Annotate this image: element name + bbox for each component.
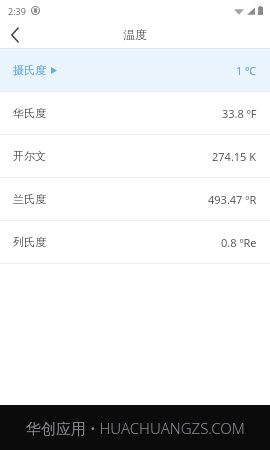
- button[interactable]: 兰氏度: [0, 178, 270, 220]
- staticText: 兰氏度: [13, 192, 46, 206]
- staticText: 1 ºC: [236, 63, 257, 78]
- staticText: 列氏度: [13, 235, 46, 249]
- staticText: 开尔文: [13, 149, 46, 163]
- button[interactable]: 列氏度: [0, 221, 270, 263]
- staticText: 493.47 ºR: [208, 192, 257, 207]
- staticText: 摄氏度: [13, 63, 46, 77]
- button[interactable]: 摄氏度: [0, 49, 270, 91]
- button[interactable]: 华氏度: [0, 92, 270, 134]
- staticText: 华氏度: [13, 106, 46, 120]
- staticText: 华创应用 • HUACHUANGZS.COM: [26, 418, 245, 438]
- staticText: 2:39: [8, 5, 26, 17]
- button[interactable]: 开尔文: [0, 135, 270, 177]
- staticText: 0.8 ºRe: [221, 235, 257, 250]
- staticText: 274.15 K: [212, 149, 257, 164]
- staticText: 33.8 ºF: [222, 106, 257, 121]
- button[interactable]: Back: [0, 21, 30, 48]
- staticText: 温度: [123, 27, 147, 42]
